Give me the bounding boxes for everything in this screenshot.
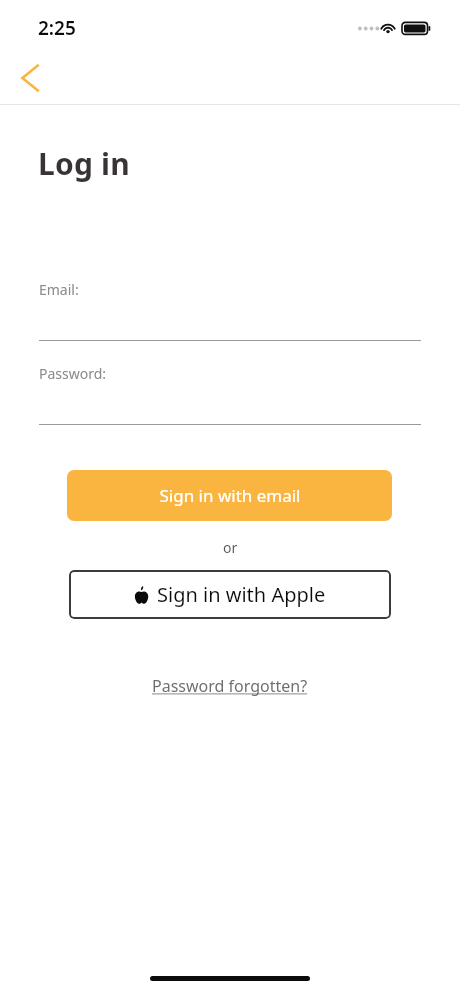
staticText: Password forgotten?	[152, 675, 308, 697]
button[interactable]	[39, 391, 421, 425]
staticText: Password:	[39, 364, 107, 383]
button[interactable]: Sign in with Apple	[69, 570, 391, 619]
staticText: 2:25	[38, 15, 76, 41]
staticText: or	[223, 538, 238, 557]
button[interactable]: Back	[8, 53, 56, 101]
staticText: Sign in with Apple	[157, 581, 326, 608]
staticText: Sign in with email	[159, 484, 301, 507]
staticText: Email:	[39, 280, 79, 299]
button[interactable]: Password forgotten?	[146, 672, 314, 700]
button[interactable]: Sign in with email	[67, 470, 392, 521]
staticText: Log in	[38, 143, 130, 184]
button[interactable]	[39, 307, 421, 341]
